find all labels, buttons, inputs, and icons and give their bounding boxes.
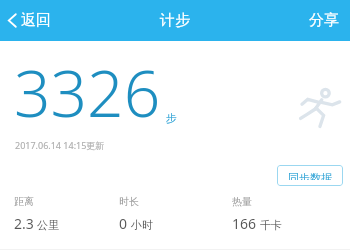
other: Running xyxy=(296,86,342,132)
other: Back xyxy=(7,12,18,29)
staticText: 时长 xyxy=(119,195,139,208)
staticText: 千卡 xyxy=(260,218,282,232)
button[interactable]: Back xyxy=(0,6,65,35)
staticText: 2017.06.14 14:15更新 xyxy=(15,139,105,151)
staticText: 公里 xyxy=(37,218,59,232)
staticText: 返回 xyxy=(21,11,51,30)
button[interactable]: 时长 xyxy=(111,186,222,250)
staticText: 热量 xyxy=(232,195,252,208)
staticText: 3326 xyxy=(14,49,161,136)
staticText: 2.3 xyxy=(14,214,34,233)
staticText: 分享 xyxy=(309,11,339,30)
staticText: 0 xyxy=(119,214,128,233)
staticText: 同步数据 xyxy=(288,171,332,180)
button[interactable]: 同步数据 xyxy=(277,165,343,186)
staticText: 计步 xyxy=(160,11,190,30)
staticText: 小时 xyxy=(131,218,153,232)
staticText: 步 xyxy=(166,111,177,125)
button[interactable]: 距离 xyxy=(0,186,111,250)
staticText: 166 xyxy=(232,214,257,233)
button[interactable]: 分享 xyxy=(298,5,350,36)
staticText: 距离 xyxy=(14,195,34,208)
button[interactable]: 热量 xyxy=(222,186,350,250)
